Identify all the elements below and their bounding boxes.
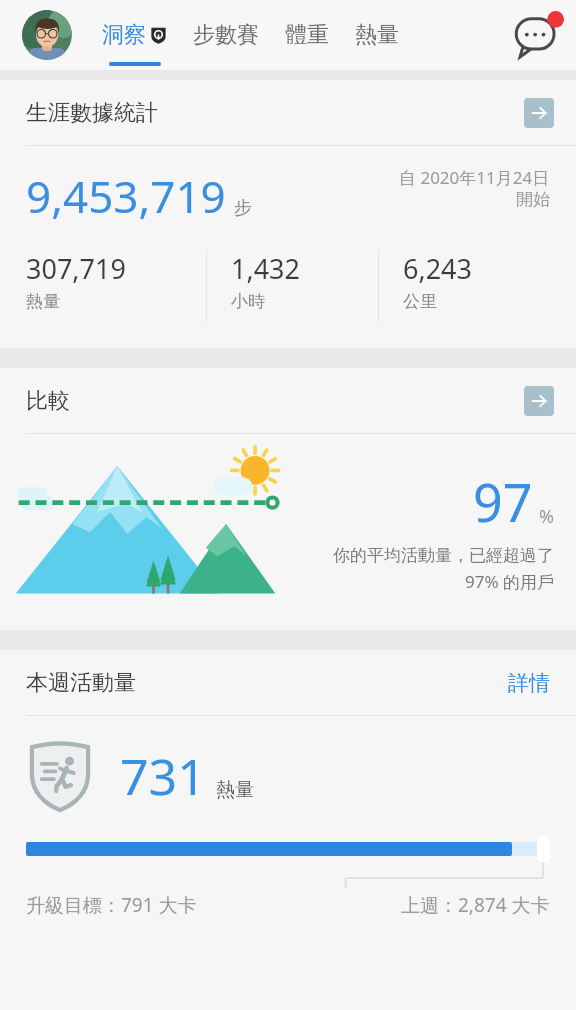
staticText: 熱量 <box>355 21 399 49</box>
button[interactable]: 詳情 <box>504 666 554 700</box>
button[interactable]: Open details <box>524 386 554 416</box>
staticText: 公里 <box>403 291 437 312</box>
staticText: 1,432 <box>231 250 301 287</box>
staticText: 你的平均活動量，已經超過了 97% 的用戶 <box>300 543 554 593</box>
staticText: 開始 <box>516 189 550 210</box>
button[interactable]: 體重 <box>285 0 329 70</box>
staticText: 上週：2,874 大卡 <box>401 892 550 918</box>
staticText: % <box>539 504 554 529</box>
staticText: 步 <box>234 197 252 220</box>
staticText: 步數賽 <box>193 21 259 49</box>
staticText: 本週活動量 <box>26 669 136 697</box>
staticText: 9,453,719 <box>26 166 226 226</box>
staticText: 6,243 <box>403 250 473 287</box>
staticText: 詳情 <box>508 670 550 696</box>
staticText: 洞察 <box>102 21 146 49</box>
staticText: 升級目標：791 大卡 <box>26 892 197 918</box>
button[interactable]: Open details <box>524 98 554 128</box>
button[interactable]: Messages <box>510 5 570 65</box>
staticText: 自 2020年11月24日 <box>399 166 550 189</box>
staticText: 97 <box>473 466 533 537</box>
staticText: 307,719 <box>26 250 126 287</box>
staticText: 小時 <box>231 291 265 312</box>
staticText: 生涯數據統計 <box>26 99 158 127</box>
button[interactable]: 洞察 <box>102 0 167 70</box>
staticText: 熱量 <box>216 778 254 802</box>
button[interactable]: 熱量 <box>355 0 399 70</box>
button[interactable]: Profile <box>22 10 72 60</box>
staticText: 體重 <box>285 21 329 49</box>
staticText: 731 <box>120 742 206 810</box>
button[interactable]: 步數賽 <box>193 0 259 70</box>
staticText: 比較 <box>26 387 70 415</box>
staticText: 熱量 <box>26 291 60 312</box>
